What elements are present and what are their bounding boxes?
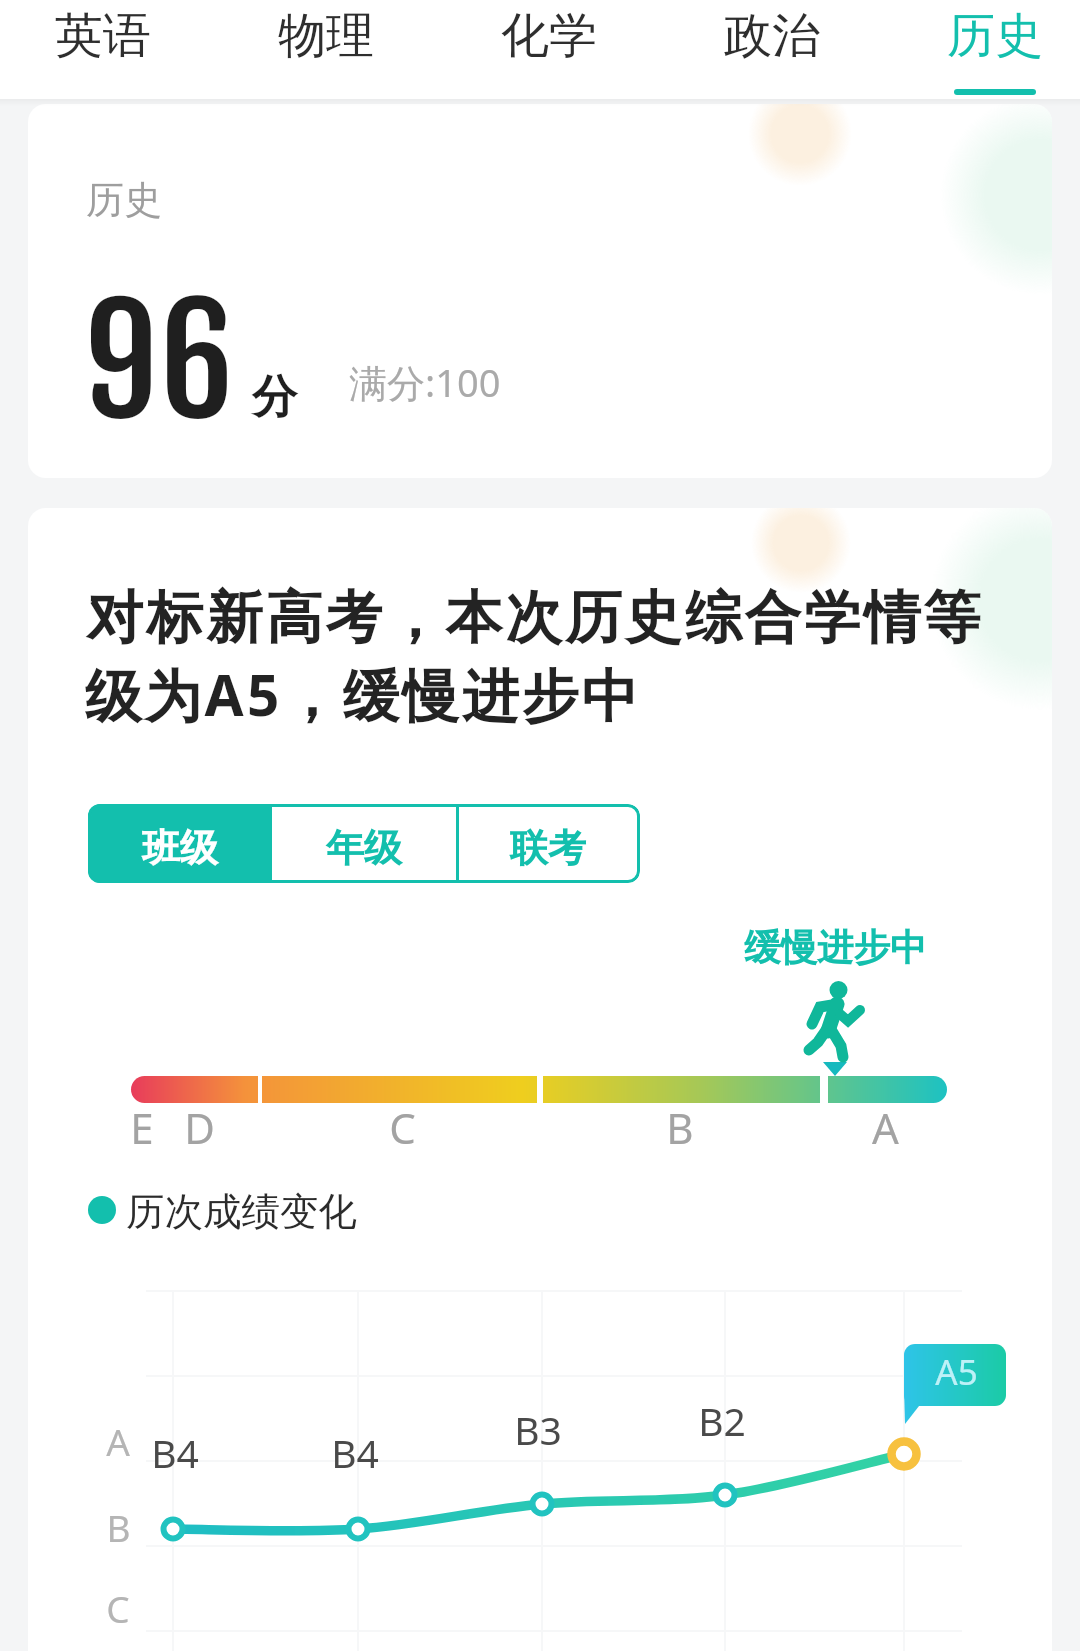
staticText: 历史 bbox=[947, 6, 1043, 66]
staticText: 历次成绩变化 bbox=[126, 1188, 357, 1237]
staticText: 物理 bbox=[278, 6, 374, 66]
staticText: 英语 bbox=[55, 6, 151, 66]
staticText: 缓慢进步中 bbox=[744, 925, 927, 971]
button[interactable]: 联考 bbox=[456, 804, 640, 883]
staticText: 96 bbox=[84, 271, 234, 454]
staticText: B bbox=[106, 1502, 131, 1552]
button[interactable]: 英语 bbox=[0, 0, 214, 99]
staticText: 对标新高考，本次历史综合学情等 bbox=[85, 583, 982, 654]
staticText: 满分:100 bbox=[349, 356, 501, 408]
staticText: 联考 bbox=[510, 824, 586, 872]
staticText: C bbox=[389, 1099, 416, 1156]
staticText: 历史 bbox=[86, 176, 162, 224]
staticText: B bbox=[666, 1099, 694, 1156]
staticText: B4 bbox=[331, 1426, 379, 1479]
staticText: 分 bbox=[252, 369, 297, 426]
staticText: B3 bbox=[514, 1403, 562, 1456]
staticText: D bbox=[184, 1099, 215, 1156]
staticText: B4 bbox=[151, 1426, 199, 1479]
staticText: A bbox=[106, 1416, 130, 1466]
staticText: 班级 bbox=[142, 824, 218, 872]
staticText: A5 bbox=[935, 1348, 978, 1396]
staticText: E bbox=[130, 1099, 154, 1156]
staticText: 级为A5，缓慢进步中 bbox=[85, 656, 642, 733]
staticText: 化学 bbox=[501, 6, 597, 66]
button[interactable]: 化学 bbox=[437, 0, 660, 99]
staticText: 年级 bbox=[326, 824, 402, 872]
button[interactable]: 物理 bbox=[214, 0, 437, 99]
button[interactable]: 政治 bbox=[660, 0, 883, 99]
button[interactable]: 班级 bbox=[88, 804, 272, 883]
button[interactable]: 年级 bbox=[272, 804, 456, 883]
staticText: A bbox=[872, 1099, 899, 1156]
button[interactable]: 历史 bbox=[883, 0, 1080, 99]
staticText: B2 bbox=[698, 1394, 746, 1447]
staticText: 政治 bbox=[724, 6, 820, 66]
staticText: C bbox=[106, 1583, 130, 1633]
